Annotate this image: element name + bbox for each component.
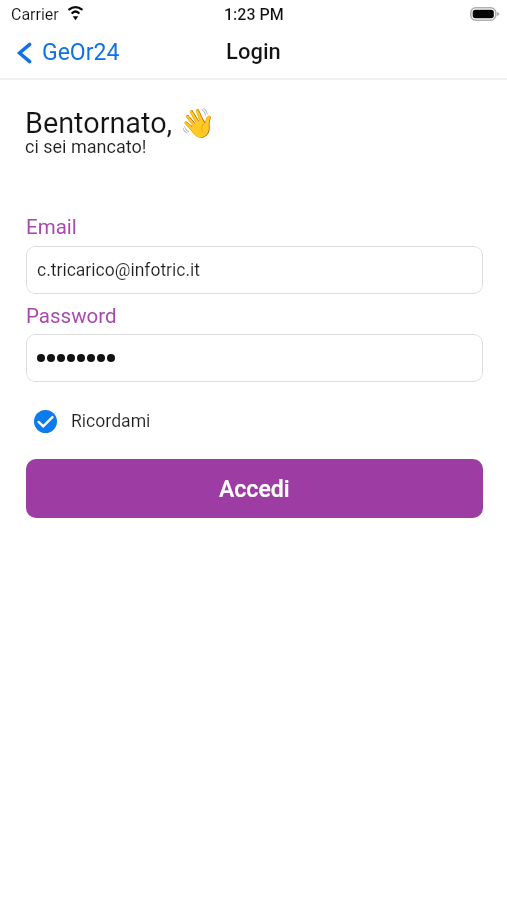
- other: Wi-Fi: [66, 5, 85, 18]
- staticText: Accedi: [219, 476, 290, 503]
- other: Battery full: [470, 7, 502, 21]
- staticText: ci sei mancato!: [25, 136, 147, 157]
- staticText: Password: [26, 304, 117, 328]
- button[interactable]: Ricordami: [19, 403, 151, 439]
- other: Back: [18, 43, 31, 63]
- button[interactable]: Back: [18, 39, 120, 66]
- button[interactable]: [26, 334, 483, 382]
- staticText: 1:23 PM: [224, 5, 284, 24]
- staticText: Ricordami: [71, 411, 151, 432]
- button[interactable]: c.tricarico@infotric.it: [26, 246, 483, 294]
- staticText: Email: [26, 215, 77, 239]
- staticText: GeOr24: [42, 39, 120, 66]
- button[interactable]: Accedi: [26, 459, 483, 518]
- staticText: Carrier: [11, 5, 59, 24]
- staticText: Login: [226, 39, 281, 65]
- staticText: c.tricarico@infotric.it: [37, 260, 201, 281]
- staticText: Bentornato, 👋: [25, 106, 216, 140]
